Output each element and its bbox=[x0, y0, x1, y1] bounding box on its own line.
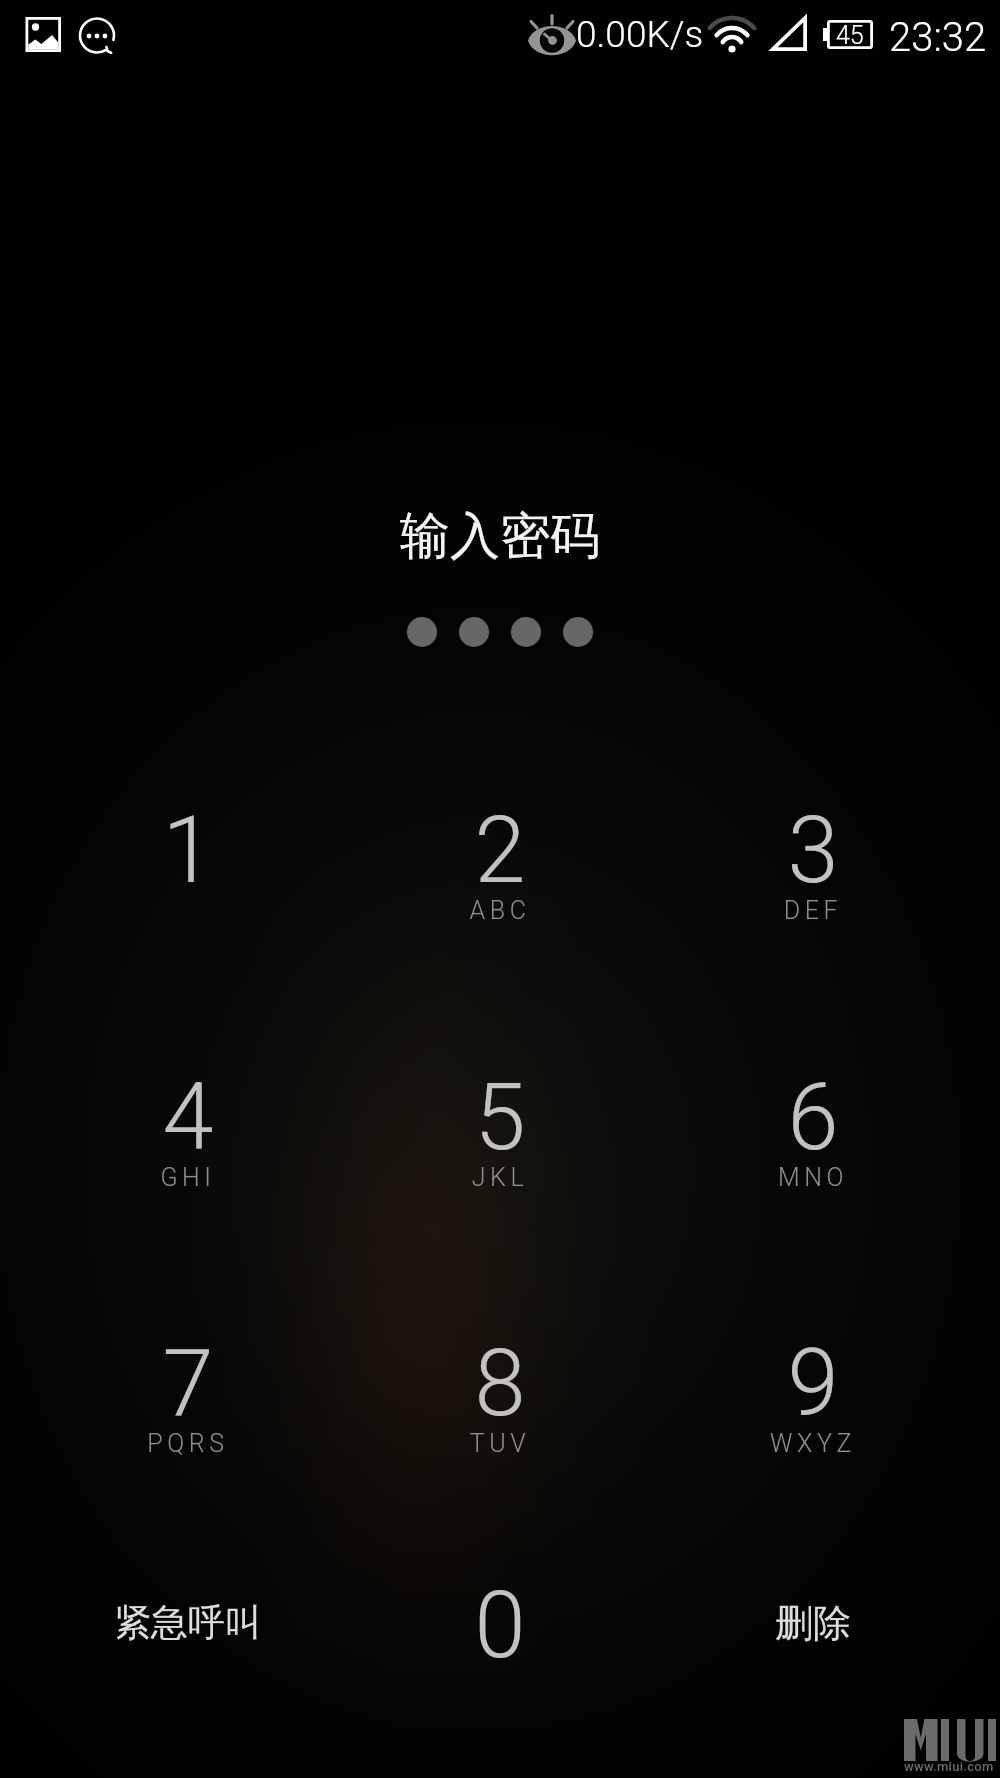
button[interactable]: 0 bbox=[370, 1530, 630, 1730]
staticText: 7 bbox=[58, 1330, 318, 1438]
staticText: TUV bbox=[370, 1429, 630, 1458]
button[interactable]: 5 bbox=[370, 1022, 630, 1222]
staticText: WXYZ bbox=[683, 1429, 943, 1458]
staticText: 0 bbox=[370, 1572, 630, 1680]
staticText: 0.00K/s bbox=[576, 13, 704, 56]
button[interactable]: 2 bbox=[370, 755, 630, 955]
staticText: 4 bbox=[58, 1064, 318, 1172]
staticText: PQRS bbox=[58, 1429, 318, 1458]
staticText: 3 bbox=[683, 797, 943, 905]
button[interactable]: 3 bbox=[683, 755, 943, 955]
staticText: MNO bbox=[683, 1163, 943, 1192]
button[interactable]: 1 bbox=[58, 755, 318, 955]
staticText: 5 bbox=[370, 1064, 630, 1172]
staticText: GHI bbox=[58, 1163, 318, 1192]
staticText: JKL bbox=[370, 1163, 630, 1192]
staticText: 45 bbox=[836, 21, 864, 50]
staticText: 1 bbox=[58, 797, 318, 905]
button[interactable]: 紧急呼叫 bbox=[58, 1530, 318, 1730]
button[interactable]: 8 bbox=[370, 1288, 630, 1488]
staticText: ABC bbox=[370, 896, 630, 925]
staticText: 8 bbox=[370, 1330, 630, 1438]
staticText: 紧急呼叫 bbox=[58, 1599, 318, 1646]
staticText: 9 bbox=[683, 1330, 943, 1438]
staticText: DEF bbox=[683, 896, 943, 925]
other: Messages bbox=[76, 13, 116, 55]
button[interactable]: 7 bbox=[58, 1288, 318, 1488]
staticText: 输入密码 bbox=[0, 505, 1000, 568]
button[interactable]: 9 bbox=[683, 1288, 943, 1488]
button[interactable]: 6 bbox=[683, 1022, 943, 1222]
staticText: 6 bbox=[683, 1064, 943, 1172]
other: Screenshot bbox=[24, 15, 63, 54]
staticText: 2 bbox=[370, 797, 630, 905]
staticText: www.miui.com bbox=[904, 1759, 994, 1774]
staticText: 23:32 bbox=[889, 14, 987, 61]
staticText: 删除 bbox=[683, 1599, 943, 1647]
button[interactable]: 4 bbox=[58, 1022, 318, 1222]
button[interactable]: 删除 bbox=[683, 1530, 943, 1730]
